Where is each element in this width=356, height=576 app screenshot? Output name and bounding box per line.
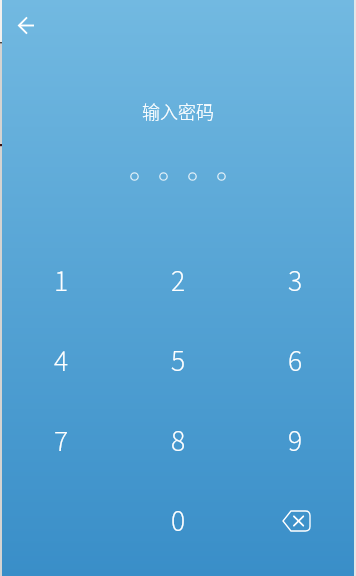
button[interactable]: 1 [2,242,120,322]
button[interactable]: 2 [120,242,237,322]
staticText: 4 [54,341,69,383]
button[interactable]: Delete [237,482,354,562]
staticText: 8 [171,421,186,463]
button[interactable]: Back [10,9,42,41]
staticText: 3 [288,261,303,303]
button[interactable]: 4 [2,322,120,402]
button[interactable]: 7 [2,402,120,482]
button[interactable]: 8 [120,402,237,482]
staticText: 7 [54,421,69,463]
staticText: 5 [171,341,186,383]
staticText: 0 [171,501,186,543]
button[interactable]: 9 [237,402,354,482]
button[interactable]: 3 [237,242,354,322]
staticText: 6 [288,341,303,383]
button[interactable]: 5 [120,322,237,402]
staticText: 1 [54,261,69,303]
staticText: 2 [171,261,186,303]
staticText: 9 [288,421,303,463]
button[interactable]: 6 [237,322,354,402]
staticText: 输入密码 [0,98,356,124]
button[interactable]: 0 [120,482,237,562]
